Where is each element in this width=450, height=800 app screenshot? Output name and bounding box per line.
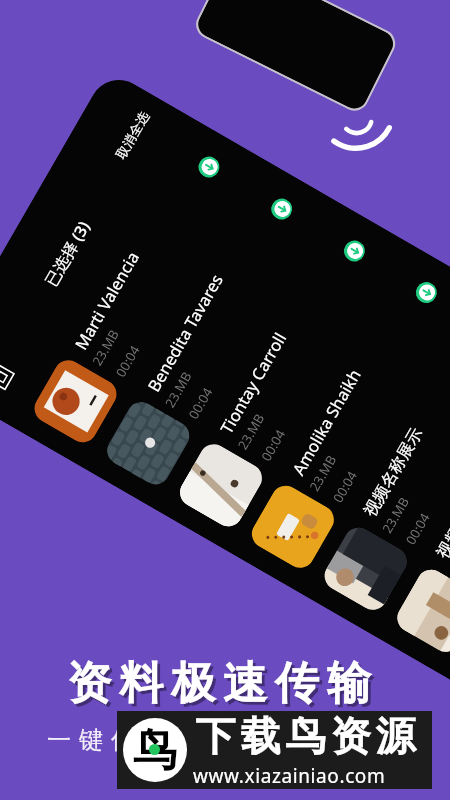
- staticText: 00:04: [329, 467, 361, 506]
- staticText: 资料极速传输: [63, 656, 375, 711]
- staticText: Marti Valencia: [69, 247, 143, 353]
- button[interactable]: 取消全选: [112, 108, 152, 161]
- staticText: 下载鸟资源: [193, 711, 418, 761]
- staticText: 23.MB: [88, 326, 123, 369]
- button[interactable]: Amolika Shaikh: [231, 243, 450, 595]
- staticText: 23.MB: [305, 452, 340, 494]
- staticText: 视频名称展示: [359, 424, 427, 520]
- staticText: 一键传输 无需流量: [47, 722, 318, 755]
- button[interactable]: Tiontay Carroll: [159, 202, 410, 553]
- staticText: Amolika Shaikh: [287, 365, 365, 479]
- staticText: Benedita Tavares: [142, 270, 227, 395]
- staticText: www.xiazainiao.com: [193, 763, 386, 789]
- other: Scan QR code: [0, 365, 14, 389]
- staticText: 鸟: [133, 723, 177, 778]
- other: Download: [412, 278, 441, 307]
- staticText: 00:04: [257, 426, 289, 464]
- staticText: 00:04: [111, 342, 144, 380]
- staticText: 取消全选: [112, 108, 152, 161]
- button[interactable]: Benedita Tavares: [87, 160, 337, 511]
- staticText: 23.MB: [233, 410, 268, 453]
- staticText: 视频名称展示: [432, 466, 450, 562]
- staticText: 23.MB: [378, 494, 413, 536]
- staticText: 已选择 (3): [40, 217, 95, 290]
- button[interactable]: 视频名称展示: [304, 285, 450, 637]
- other: Download: [195, 153, 223, 181]
- other: Download: [267, 195, 296, 223]
- staticText: 23.MB: [161, 368, 196, 411]
- staticText: Tiontay Carroll: [215, 327, 291, 437]
- button[interactable]: 视频名称展示: [377, 327, 450, 679]
- button[interactable]: Marti Valencia: [14, 118, 265, 469]
- other: Download: [340, 237, 369, 265]
- staticText: 资料极速传输: [66, 659, 378, 714]
- staticText: 00:04: [184, 384, 217, 422]
- staticText: 00:04: [401, 509, 434, 548]
